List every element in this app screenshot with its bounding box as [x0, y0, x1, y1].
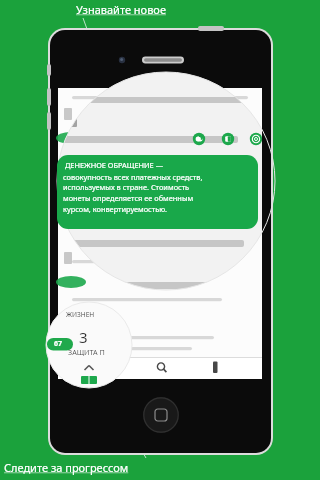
button[interactable]: Следите за прогрессом	[4, 458, 154, 476]
button[interactable]: Узнавайте новое	[76, 0, 186, 18]
button[interactable]: Определение: денежное обращение	[57, 155, 258, 229]
button[interactable]: Домой	[143, 397, 179, 433]
button[interactable]: Закладки	[196, 357, 238, 379]
button[interactable]: Поиск	[140, 357, 182, 379]
button[interactable]: Прогресс: уровень 3	[46, 302, 132, 388]
